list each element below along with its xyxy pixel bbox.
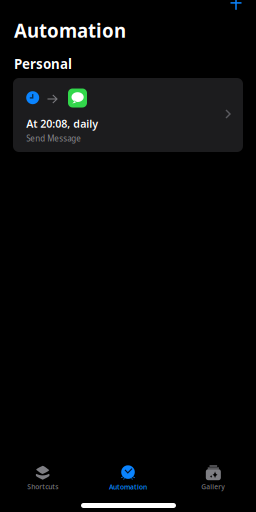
staticText: Gallery [201,482,225,491]
staticText: Automation [14,18,126,43]
staticText: Shortcuts [27,482,58,491]
staticText: At 20:08, daily [26,116,98,131]
button[interactable]: At 20:08, daily [13,78,243,152]
staticText: Automation [109,483,147,491]
staticText: Personal [14,55,72,73]
staticText: Send Message [26,133,81,144]
button[interactable]: New Automation [223,0,249,18]
button[interactable]: Gallery [171,465,256,491]
button[interactable]: Automation [85,465,171,491]
button[interactable]: Shortcuts [0,465,85,491]
